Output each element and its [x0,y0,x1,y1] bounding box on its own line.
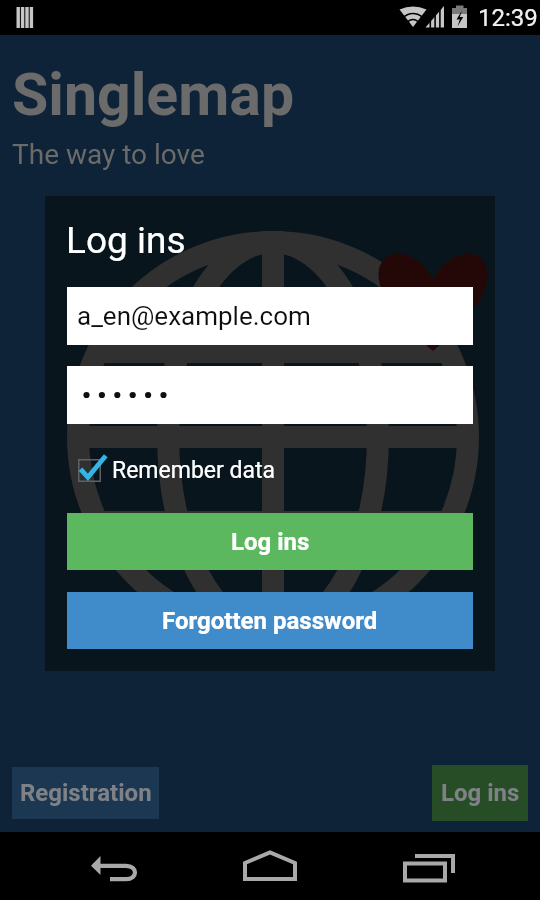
staticText: Log ins [66,219,186,262]
staticText: 12:39 [478,4,538,32]
button[interactable]: Home [225,840,315,892]
button[interactable]: Remember data [78,457,276,484]
button[interactable] [67,366,473,424]
button[interactable]: Forgotten password [67,592,473,649]
staticText: Remember data [112,457,276,484]
staticText: Singlemap [12,60,295,129]
button[interactable]: Recent apps [385,840,475,892]
staticText: a_en@example.com [77,301,311,331]
button[interactable]: Log ins [432,765,528,821]
button[interactable]: a_en@example.com [67,287,473,345]
staticText: Registration [20,779,152,807]
staticText: The way to love [12,138,205,171]
button[interactable]: Log ins [67,513,473,570]
staticText: Forgotten password [162,607,378,635]
staticText: Log ins [231,528,310,556]
button[interactable]: Back [70,840,160,892]
staticText: Log ins [441,779,520,807]
button[interactable]: Registration [12,767,159,819]
